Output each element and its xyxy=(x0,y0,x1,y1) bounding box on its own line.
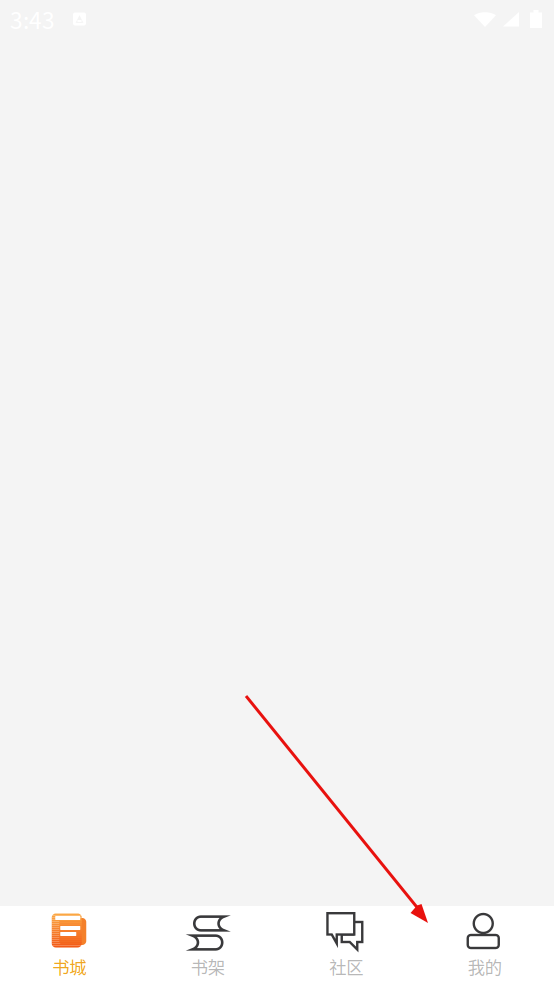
staticText: 书架 xyxy=(191,954,225,979)
button[interactable]: 我的 xyxy=(415,906,554,984)
button[interactable]: 社区 xyxy=(277,906,415,984)
staticText: 书城 xyxy=(52,954,86,979)
button[interactable]: 书架 xyxy=(138,906,277,984)
button[interactable]: 书城 xyxy=(0,906,138,984)
staticText: 社区 xyxy=(329,954,363,979)
staticText: 3:43 xyxy=(10,3,55,35)
staticText: 我的 xyxy=(468,954,502,979)
